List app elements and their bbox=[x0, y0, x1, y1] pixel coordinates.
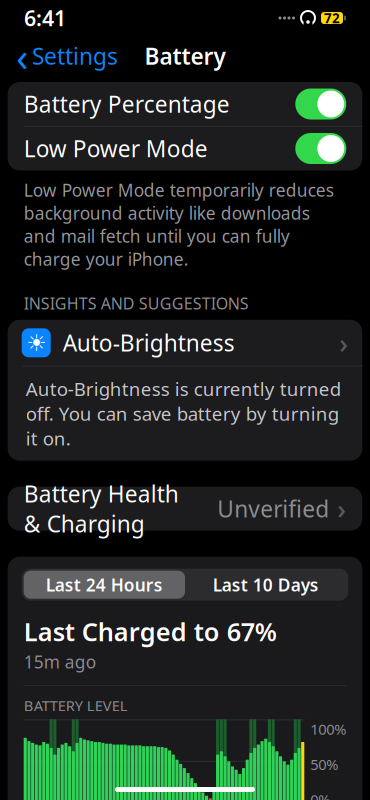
staticText: Battery Health & Charging bbox=[24, 479, 179, 539]
staticText: Unverified bbox=[217, 494, 329, 524]
staticText: 0% bbox=[310, 790, 330, 800]
button[interactable]: ‹ bbox=[6, 25, 128, 86]
staticText: 72 bbox=[324, 9, 340, 27]
staticText: Battery bbox=[144, 41, 225, 71]
staticText: ☀ bbox=[26, 330, 46, 356]
staticText: ‹ bbox=[16, 29, 28, 82]
button[interactable]: Last 10 Days bbox=[185, 571, 346, 599]
staticText: 50% bbox=[310, 755, 338, 774]
button[interactable]: Low Power Mode bbox=[8, 126, 362, 170]
staticText: Auto-Brightness is currently turned off.… bbox=[26, 376, 341, 451]
staticText: 6:41 bbox=[24, 4, 66, 32]
button[interactable]: Last 24 Hours bbox=[24, 571, 185, 599]
staticText: Battery Percentage bbox=[24, 89, 230, 119]
button[interactable]: ☀ bbox=[8, 320, 362, 366]
staticText: Low Power Mode bbox=[24, 133, 208, 163]
button[interactable]: Battery Health & Charging bbox=[8, 487, 362, 531]
staticText: 100% bbox=[310, 719, 346, 739]
staticText: › bbox=[337, 491, 346, 526]
staticText: Last 10 Days bbox=[213, 573, 319, 596]
staticText: Settings bbox=[32, 41, 118, 71]
button[interactable]: Battery Percentage bbox=[8, 82, 362, 126]
staticText: Last Charged to 67% bbox=[24, 615, 277, 648]
staticText: BATTERY LEVEL bbox=[24, 696, 128, 715]
staticText: 15m ago bbox=[24, 650, 96, 673]
staticText: Low Power Mode temporarily reduces backg… bbox=[24, 178, 334, 271]
staticText: INSIGHTS AND SUGGESTIONS bbox=[24, 293, 249, 314]
staticText: › bbox=[339, 325, 348, 360]
staticText: Last 24 Hours bbox=[46, 573, 163, 596]
staticText: Auto-Brightness bbox=[63, 328, 235, 358]
